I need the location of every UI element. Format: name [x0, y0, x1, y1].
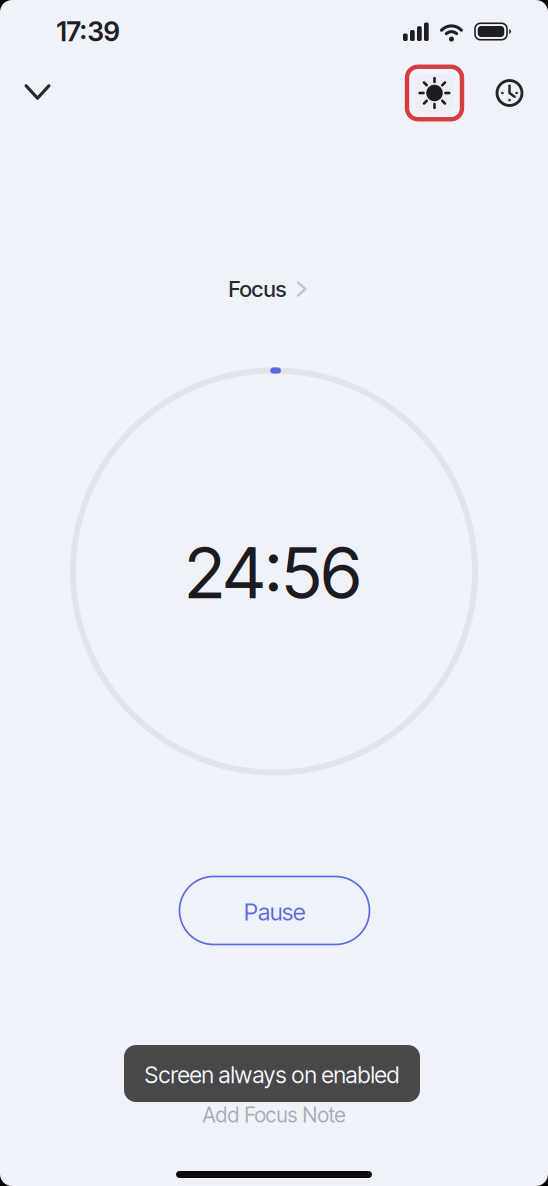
staticText: 24:56: [185, 530, 361, 615]
button[interactable]: Collapse: [16, 76, 58, 108]
staticText: 17:39: [56, 15, 119, 48]
button[interactable]: Focus mode: [228, 276, 307, 302]
staticText: Focus: [228, 276, 286, 302]
staticText: Pause: [244, 898, 305, 926]
staticText: Add Focus Note: [202, 1102, 345, 1127]
button[interactable]: History: [490, 73, 529, 112]
button[interactable]: Pause: [179, 876, 369, 944]
button[interactable]: Screen always on: [406, 65, 463, 120]
staticText: Screen always on enabled: [144, 1061, 399, 1089]
button[interactable]: Add Focus Note: [202, 1102, 345, 1127]
